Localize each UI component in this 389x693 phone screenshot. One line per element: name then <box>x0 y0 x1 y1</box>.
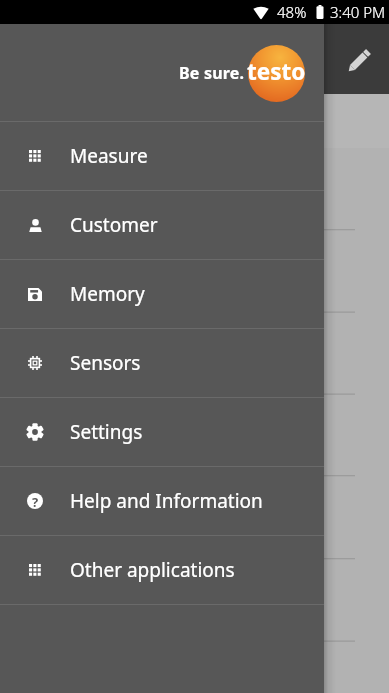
button[interactable]: Memory <box>0 260 324 328</box>
button[interactable]: Settings <box>0 398 324 466</box>
staticText: testo <box>247 56 306 87</box>
staticText: Sensors <box>70 350 141 376</box>
button[interactable]: Sensors <box>0 329 324 397</box>
staticText: Memory <box>70 281 145 307</box>
button[interactable]: Measure <box>0 122 324 190</box>
staticText: Measure <box>70 143 148 169</box>
staticText: Be sure. <box>179 62 245 84</box>
staticText: 48% <box>277 2 307 22</box>
staticText: ? <box>32 493 39 509</box>
staticText: Customer <box>70 212 158 238</box>
button[interactable]: Customer <box>0 191 324 259</box>
staticText: Help and Information <box>70 488 263 514</box>
staticText: Settings <box>70 419 143 445</box>
button[interactable]: Edit <box>336 39 380 83</box>
button[interactable]: Other applications <box>0 536 324 604</box>
staticText: Other applications <box>70 557 235 583</box>
staticText: 3:40 PM <box>330 2 386 22</box>
button[interactable]: ? <box>0 467 324 535</box>
